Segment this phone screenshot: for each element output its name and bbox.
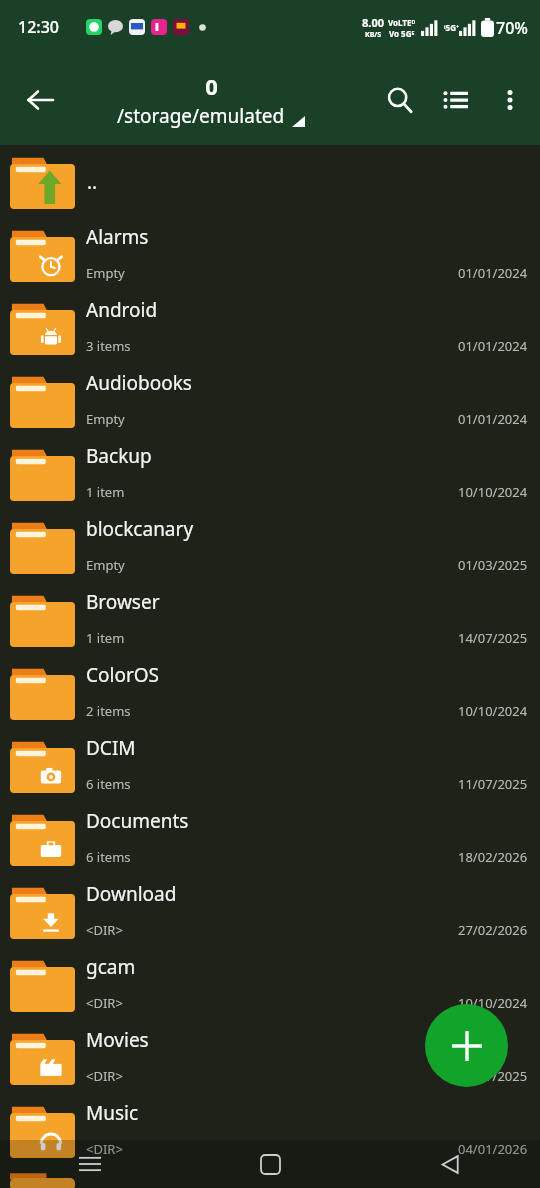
button[interactable]: Download — [0, 875, 540, 948]
staticText: 01/01/2024 — [458, 264, 528, 282]
staticText: ColorOS — [86, 662, 160, 688]
staticText: Empty — [86, 556, 125, 574]
staticText: 01/01/2024 — [458, 337, 528, 355]
staticText: Documents — [86, 808, 189, 834]
staticText: 0 — [205, 71, 218, 101]
button[interactable]: Android — [0, 291, 540, 364]
staticText: <DIR> — [86, 994, 123, 1012]
staticText: 01/01/2024 — [458, 410, 528, 428]
staticText: Android — [86, 297, 158, 323]
staticText: Alarms — [86, 224, 149, 250]
staticText: <DIR> — [86, 921, 123, 939]
staticText: Backup — [86, 443, 152, 469]
staticText: Vo 5Gᴱ — [389, 28, 415, 39]
staticText: 6 items — [86, 775, 131, 793]
button[interactable]: blockcanary — [0, 510, 540, 583]
staticText: Empty — [86, 410, 125, 428]
staticText: 04/01/2026 — [458, 1140, 528, 1158]
staticText: 1 item — [86, 629, 125, 647]
staticText: 3 items — [86, 337, 131, 355]
staticText: 11/07/2025 — [458, 775, 528, 793]
staticText: ⁱ5G⁺ — [444, 22, 459, 33]
staticText: DCIM — [86, 735, 136, 761]
button[interactable]: gcam — [0, 948, 540, 1021]
staticText: 10/07/2025 — [458, 1067, 528, 1085]
button[interactable]: .. — [0, 145, 540, 218]
button[interactable]: Recents — [0, 1140, 180, 1188]
staticText: .. — [87, 169, 98, 195]
staticText: 2 items — [86, 702, 131, 720]
button[interactable]: Add — [425, 1004, 508, 1087]
staticText: 10/10/2024 — [458, 702, 528, 720]
staticText: Browser — [86, 589, 160, 615]
button[interactable]: Audiobooks — [0, 364, 540, 437]
staticText: KB/S — [365, 30, 382, 40]
button[interactable]: 0 — [86, 71, 336, 129]
staticText: 14/07/2025 — [458, 629, 528, 647]
button[interactable]: Backup — [0, 437, 540, 510]
button[interactable]: ColorOS — [0, 656, 540, 729]
staticText: 18/02/2026 — [458, 848, 528, 866]
button[interactable]: DCIM — [0, 729, 540, 802]
button[interactable]: Alarms — [0, 218, 540, 291]
button[interactable]: Documents — [0, 802, 540, 875]
staticText: 01/03/2025 — [458, 556, 528, 574]
staticText: /storage/emulated — [117, 103, 285, 129]
button[interactable]: Movies — [0, 1021, 540, 1094]
staticText: Music — [86, 1100, 139, 1126]
staticText: 70% — [496, 17, 528, 39]
button[interactable]: View mode — [428, 72, 484, 128]
button[interactable]: Back — [12, 72, 68, 128]
staticText: Empty — [86, 264, 125, 282]
staticText: VoLTEᴰ — [388, 17, 416, 28]
staticText: <DIR> — [86, 1140, 123, 1158]
staticText: 1 item — [86, 483, 125, 501]
staticText: 12:30 — [18, 16, 59, 38]
staticText: <DIR> — [86, 1067, 123, 1085]
staticText: 8.00 — [362, 15, 384, 30]
staticText: Audiobooks — [86, 370, 192, 396]
staticText: Movies — [86, 1027, 149, 1053]
button[interactable]: Back — [360, 1140, 540, 1188]
button[interactable]: More options — [484, 72, 536, 128]
staticText: 10/10/2024 — [458, 994, 528, 1012]
staticText: 6 items — [86, 848, 131, 866]
button[interactable]: Music — [0, 1094, 540, 1167]
staticText: 10/10/2024 — [458, 483, 528, 501]
staticText: gcam — [86, 954, 136, 980]
button[interactable]: Search — [372, 72, 428, 128]
button[interactable]: Home — [180, 1140, 360, 1188]
staticText: Download — [86, 881, 177, 907]
staticText: blockcanary — [86, 516, 194, 542]
button[interactable]: Browser — [0, 583, 540, 656]
staticText: 27/02/2026 — [458, 921, 528, 939]
